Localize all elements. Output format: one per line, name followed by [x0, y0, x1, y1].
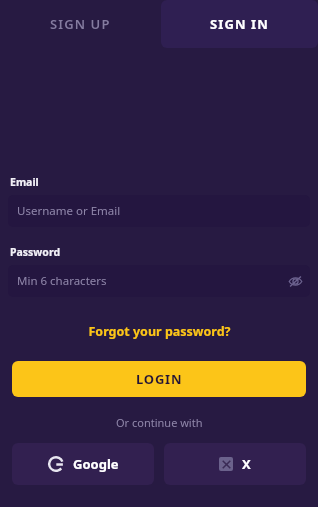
staticText: Forgot your password? — [88, 323, 231, 340]
button[interactable]: SIGN IN — [161, 0, 318, 48]
staticText: Username or Email — [17, 203, 121, 219]
staticText: Google — [73, 455, 119, 473]
staticText: Email — [10, 175, 39, 189]
staticText: Password — [10, 245, 61, 259]
staticText: Or continue with — [116, 415, 203, 430]
button[interactable]: Forgot your password? — [0, 319, 318, 343]
button[interactable]: LOGIN — [12, 361, 306, 397]
staticText: Min 6 characters — [17, 273, 107, 289]
button[interactable]: Min 6 characters — [8, 265, 310, 297]
button[interactable]: X — [164, 443, 306, 485]
staticText: X — [242, 455, 251, 473]
staticText: SIGN IN — [210, 15, 269, 33]
staticText: SIGN UP — [50, 15, 111, 33]
button[interactable]: SIGN UP — [0, 0, 161, 48]
button[interactable]: Username or Email — [8, 195, 310, 227]
staticText: LOGIN — [136, 370, 183, 388]
button[interactable]: Google — [12, 443, 154, 485]
button[interactable]: Show password — [280, 266, 310, 296]
